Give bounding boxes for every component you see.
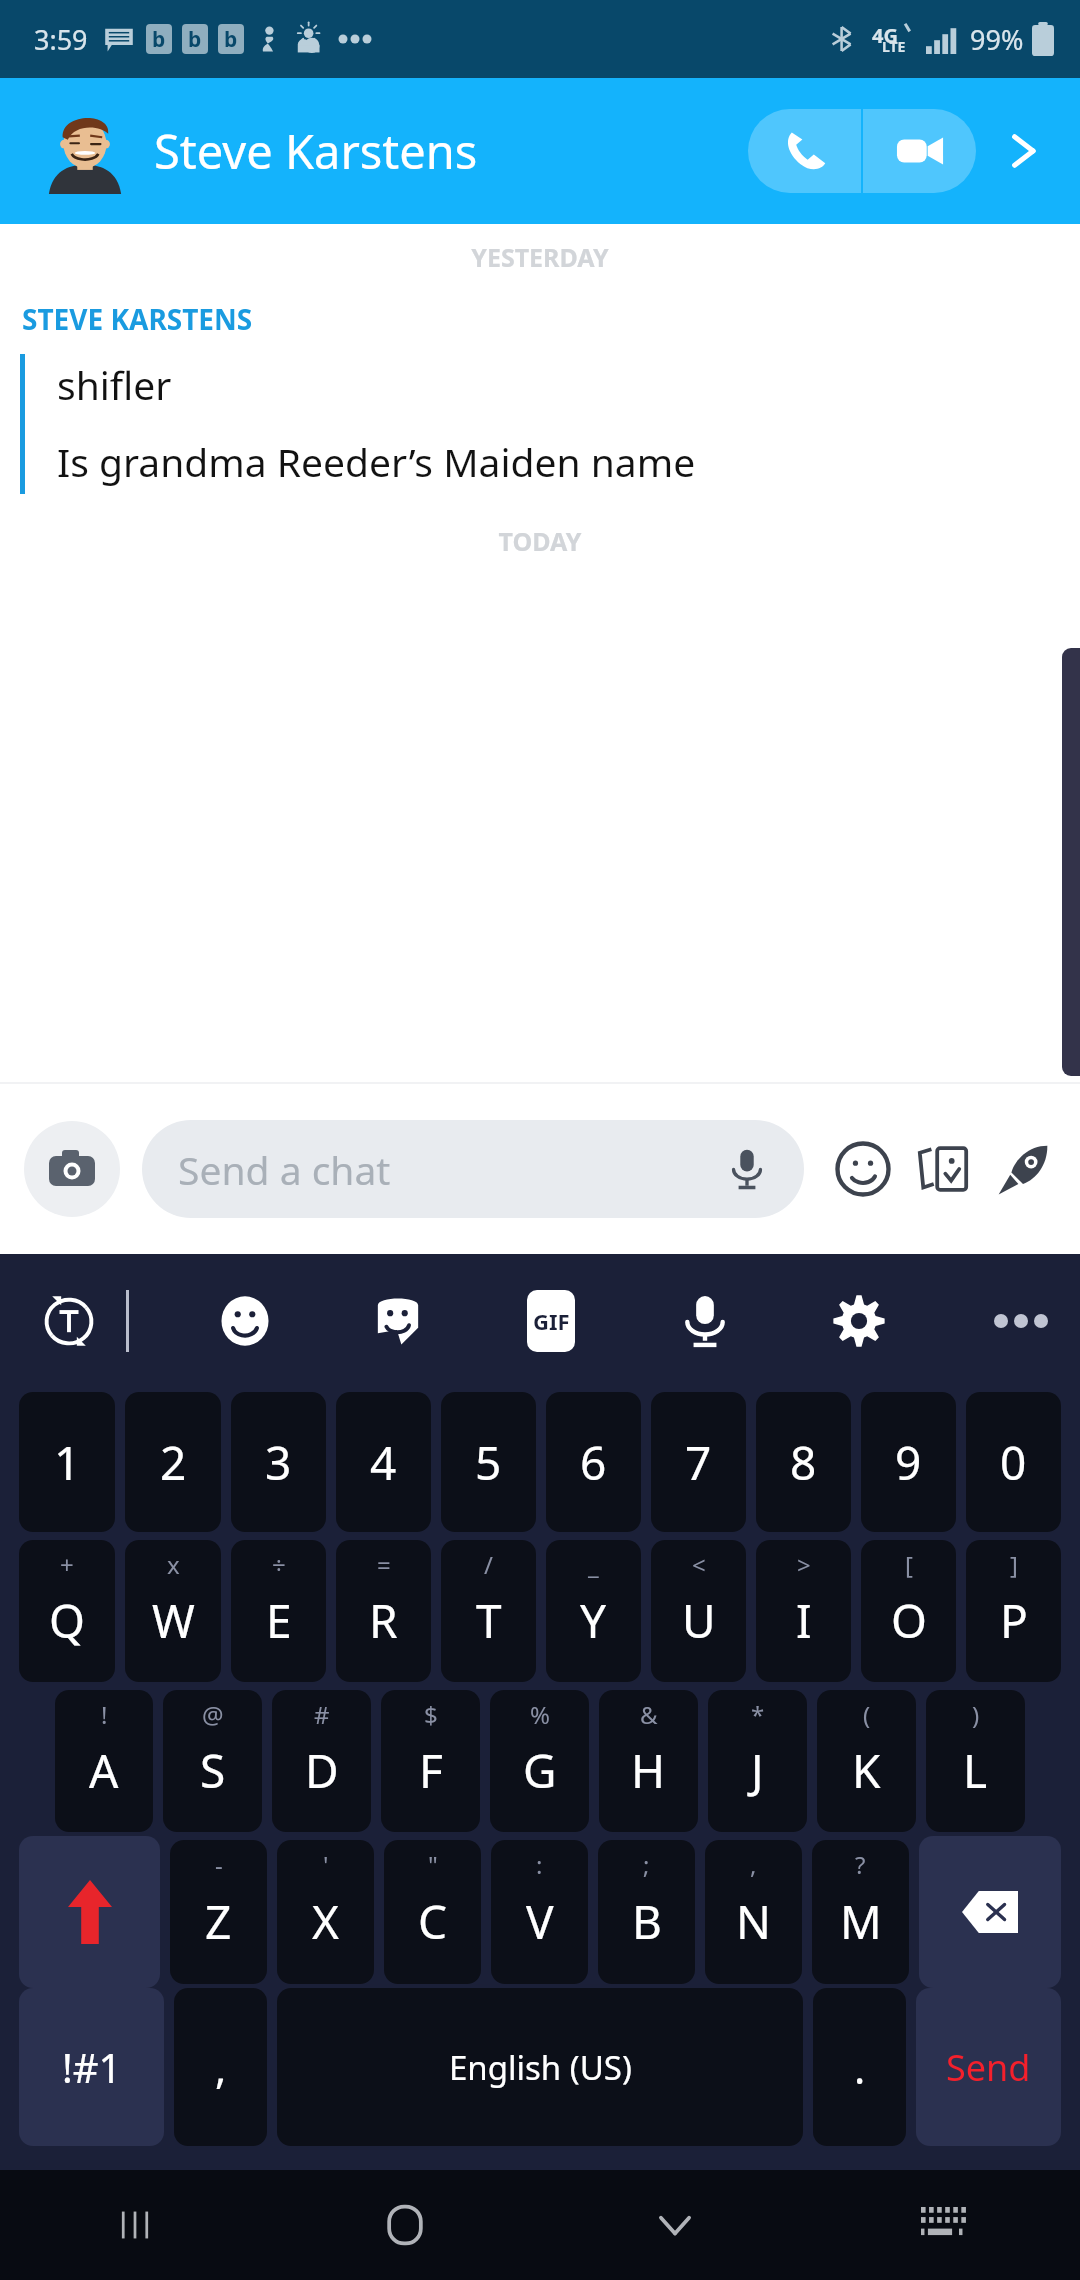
staticText: 8 bbox=[790, 1431, 817, 1494]
staticText: = bbox=[377, 1548, 391, 1581]
button[interactable]: x bbox=[125, 1540, 221, 1682]
button[interactable]: !#1 bbox=[19, 1988, 164, 2146]
button[interactable]: ; bbox=[598, 1840, 695, 1984]
staticText: ] bbox=[1010, 1548, 1018, 1581]
staticText: W bbox=[152, 1589, 195, 1652]
staticText: ' bbox=[323, 1848, 329, 1881]
button[interactable]: % bbox=[490, 1690, 589, 1832]
staticText: Y bbox=[580, 1589, 607, 1652]
button[interactable]: Voice input bbox=[668, 1284, 742, 1358]
staticText: I bbox=[796, 1589, 812, 1652]
staticText: / bbox=[484, 1548, 493, 1581]
staticText: $ bbox=[424, 1698, 438, 1731]
button[interactable]: , bbox=[705, 1840, 802, 1984]
staticText: 2 bbox=[160, 1431, 187, 1494]
staticText: C bbox=[418, 1890, 448, 1953]
staticText: D bbox=[305, 1739, 339, 1802]
button[interactable]: 2 bbox=[125, 1392, 221, 1532]
button[interactable]: 7 bbox=[651, 1392, 746, 1532]
button[interactable]: " bbox=[384, 1840, 481, 1984]
staticText: < bbox=[692, 1548, 706, 1581]
button[interactable]: Send a chat bbox=[142, 1120, 804, 1218]
staticText: H bbox=[631, 1739, 666, 1802]
staticText: ? bbox=[855, 1848, 866, 1881]
staticText: 0 bbox=[1000, 1431, 1027, 1494]
button[interactable]: @ bbox=[163, 1690, 262, 1832]
staticText: % bbox=[530, 1698, 550, 1731]
button[interactable]: 6 bbox=[546, 1392, 641, 1532]
button[interactable]: > bbox=[756, 1540, 851, 1682]
staticText: F bbox=[419, 1739, 443, 1802]
button[interactable]: / bbox=[441, 1540, 536, 1682]
button[interactable]: $ bbox=[381, 1690, 480, 1832]
button[interactable]: 1 bbox=[19, 1392, 115, 1532]
staticText: 4 bbox=[370, 1431, 397, 1494]
button[interactable]: Home bbox=[270, 2170, 540, 2280]
button[interactable]: Translate bbox=[30, 1282, 108, 1360]
button[interactable]: Open conversation bbox=[992, 120, 1054, 182]
button[interactable]: Recents bbox=[0, 2170, 270, 2280]
button[interactable]: & bbox=[599, 1690, 698, 1832]
staticText: A bbox=[89, 1739, 119, 1802]
button[interactable]: 8 bbox=[756, 1392, 851, 1532]
staticText: G bbox=[523, 1739, 557, 1802]
staticText: ! bbox=[101, 1698, 108, 1731]
button[interactable]: 4 bbox=[336, 1392, 431, 1532]
button[interactable]: ? bbox=[812, 1840, 909, 1984]
button[interactable]: ( bbox=[817, 1690, 916, 1832]
button[interactable]: Video call bbox=[863, 109, 976, 193]
button[interactable]: GIF bbox=[514, 1284, 588, 1358]
button[interactable]: Camera bbox=[24, 1121, 120, 1217]
button[interactable]: English (US) bbox=[277, 1988, 803, 2146]
button[interactable]: More options bbox=[976, 1284, 1050, 1358]
staticText: K bbox=[852, 1739, 881, 1802]
button[interactable]: _ bbox=[546, 1540, 641, 1682]
button[interactable]: = bbox=[336, 1540, 431, 1682]
button[interactable]: ÷ bbox=[231, 1540, 326, 1682]
staticText: 7 bbox=[685, 1431, 712, 1494]
staticText: P bbox=[1000, 1589, 1028, 1652]
staticText: GIF bbox=[533, 1306, 570, 1336]
staticText: L bbox=[963, 1739, 988, 1802]
button[interactable]: . bbox=[813, 1988, 906, 2146]
staticText: 99% bbox=[970, 21, 1024, 58]
button[interactable]: Cards bbox=[910, 1136, 976, 1202]
button[interactable]: * bbox=[708, 1690, 807, 1832]
staticText: 3 bbox=[265, 1431, 292, 1494]
staticText: TODAY bbox=[0, 524, 1080, 558]
button[interactable]: 9 bbox=[861, 1392, 956, 1532]
button[interactable]: 5 bbox=[441, 1392, 536, 1532]
button[interactable]: Emoji bbox=[208, 1284, 282, 1358]
staticText: B bbox=[632, 1890, 662, 1953]
button[interactable]: Stickers bbox=[830, 1136, 896, 1202]
button[interactable]: # bbox=[272, 1690, 371, 1832]
staticText: X bbox=[312, 1890, 339, 1953]
staticText: LTE bbox=[882, 37, 906, 56]
button[interactable]: Shift bbox=[19, 1836, 160, 1988]
button[interactable]: 3 bbox=[231, 1392, 326, 1532]
button[interactable]: Send bbox=[916, 1988, 1061, 2146]
button[interactable]: + bbox=[19, 1540, 115, 1682]
button[interactable]: , bbox=[174, 1988, 267, 2146]
button[interactable]: < bbox=[651, 1540, 746, 1682]
button[interactable]: Backspace bbox=[919, 1836, 1061, 1988]
button[interactable]: ) bbox=[926, 1690, 1025, 1832]
button[interactable]: Hide keyboard bbox=[540, 2170, 810, 2280]
button[interactable]: Rocket bbox=[990, 1136, 1056, 1202]
button[interactable]: : bbox=[491, 1840, 588, 1984]
button[interactable]: 0 bbox=[966, 1392, 1061, 1532]
button[interactable]: Voice call bbox=[748, 109, 861, 193]
button[interactable]: ' bbox=[277, 1840, 374, 1984]
button[interactable]: Profile bbox=[42, 108, 128, 194]
button[interactable]: Keyboard settings bbox=[822, 1284, 896, 1358]
button[interactable]: - bbox=[170, 1840, 267, 1984]
staticText: Is grandma Reeder’s Maiden name bbox=[57, 435, 696, 488]
staticText: Send bbox=[946, 2043, 1031, 2092]
button[interactable]: Sticker bbox=[361, 1284, 435, 1358]
button[interactable]: [ bbox=[861, 1540, 956, 1682]
button[interactable]: Switch keyboard bbox=[810, 2170, 1080, 2280]
staticText: shifler bbox=[57, 358, 172, 411]
button[interactable]: ] bbox=[966, 1540, 1061, 1682]
button[interactable]: ! bbox=[55, 1690, 153, 1832]
staticText: , bbox=[750, 1848, 757, 1881]
